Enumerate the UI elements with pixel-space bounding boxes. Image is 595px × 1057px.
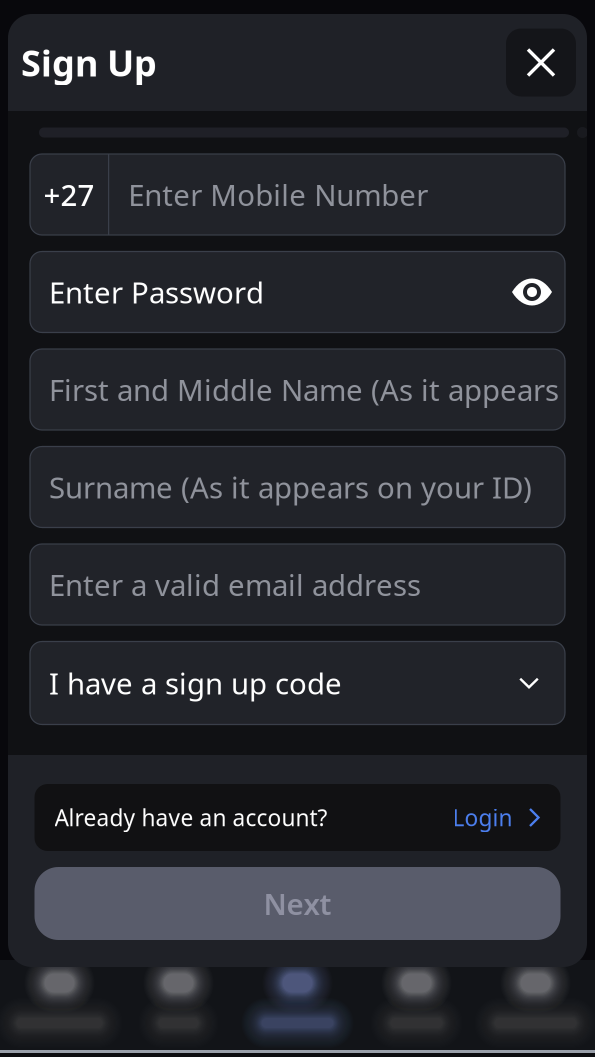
- button[interactable]: Enter a valid email address: [30, 544, 565, 625]
- button[interactable]: Promos: [0, 960, 119, 1050]
- staticText: Already have an account?: [54, 802, 327, 832]
- staticText: +27: [43, 175, 94, 214]
- button[interactable]: Support: [476, 960, 595, 1050]
- button[interactable]: Surname (As it appears on your ID): [30, 446, 565, 527]
- button[interactable]: Already have an account?: [34, 784, 560, 851]
- button[interactable]: More: [357, 960, 476, 1050]
- staticText: Enter Mobile Number: [128, 175, 428, 214]
- button[interactable]: I have a sign up code: [30, 641, 565, 724]
- button[interactable]: First and Middle Name (As it appears on …: [30, 349, 565, 430]
- staticText: Login: [452, 802, 512, 832]
- button[interactable]: Next: [34, 867, 560, 940]
- staticText: Enter a valid email address: [49, 565, 421, 604]
- button[interactable]: +27: [30, 154, 565, 235]
- button[interactable]: Fin: [119, 960, 238, 1050]
- staticText: Enter Password: [49, 272, 264, 311]
- staticText: Sign Up: [21, 39, 157, 86]
- staticText: Next: [263, 884, 331, 923]
- staticText: First and Middle Name (As it appears on …: [49, 370, 595, 409]
- staticText: I have a sign up code: [49, 663, 342, 702]
- button[interactable]: Sign Up: [238, 960, 357, 1050]
- staticText: Surname (As it appears on your ID): [49, 467, 532, 506]
- button[interactable]: Enter Password: [30, 251, 565, 332]
- button[interactable]: Close: [506, 28, 576, 96]
